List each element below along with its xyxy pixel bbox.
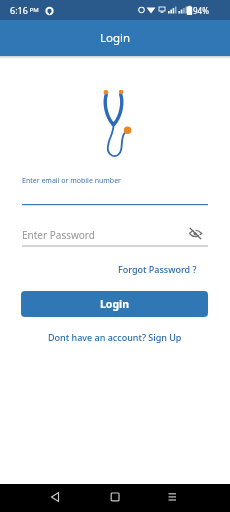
staticText: Login xyxy=(100,297,130,311)
staticText: 6:16 xyxy=(10,4,28,16)
staticText: Enter Password xyxy=(22,228,95,242)
staticText: Login xyxy=(100,30,131,46)
button[interactable]: Forgot Password ? xyxy=(118,263,197,275)
staticText: Forgot Password ? xyxy=(118,263,197,275)
staticText: Dont have an account? Sign Up xyxy=(48,331,182,343)
button[interactable]: Login xyxy=(21,291,208,317)
button[interactable]: Dont have an account? Sign Up xyxy=(48,331,182,343)
button[interactable]: Enter Password xyxy=(21,226,209,248)
button[interactable]: Enter email or mobile number xyxy=(21,172,209,206)
staticText: Enter email or mobile number xyxy=(22,176,122,186)
staticText: PM xyxy=(28,6,39,14)
staticText: 94% xyxy=(193,5,209,16)
